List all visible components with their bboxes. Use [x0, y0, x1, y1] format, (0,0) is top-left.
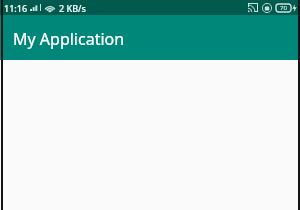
- other: Wi-Fi connected: [44, 3, 56, 12]
- other: Screen cast: [248, 3, 258, 12]
- staticText: 2 KB/s: [59, 2, 86, 14]
- other: Do not disturb: [262, 3, 272, 13]
- staticText: My Application: [13, 28, 125, 50]
- staticText: 70: [280, 4, 287, 12]
- other: Charging: [292, 4, 297, 12]
- button[interactable]: My Application: [0, 15, 300, 60]
- staticText: 11:16: [4, 2, 28, 14]
- other: Mobile signal strength: [30, 4, 38, 11]
